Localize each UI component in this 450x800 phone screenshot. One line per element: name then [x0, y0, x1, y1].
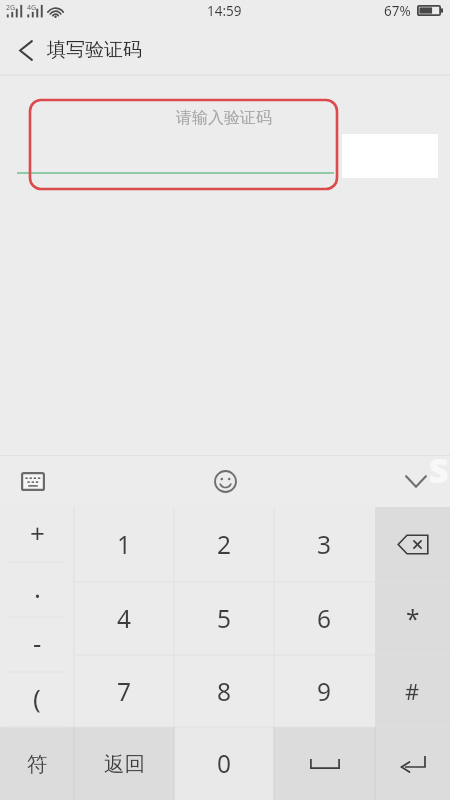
staticText: .: [34, 570, 41, 605]
staticText: 2G: [6, 3, 16, 13]
staticText: 9: [317, 675, 332, 708]
button[interactable]: 2: [174, 507, 274, 582]
button[interactable]: *: [375, 582, 450, 655]
button[interactable]: 8: [174, 655, 274, 727]
staticText: 6: [317, 602, 332, 635]
staticText: 7: [117, 675, 132, 708]
button[interactable]: -: [0, 617, 74, 672]
staticText: +: [30, 515, 45, 550]
staticText: 8: [217, 675, 232, 708]
button[interactable]: Switch keyboard: [10, 458, 56, 504]
staticText: 14:59: [207, 2, 242, 20]
staticText: 返回: [104, 751, 145, 777]
staticText: 4: [117, 602, 132, 635]
button[interactable]: (: [0, 672, 74, 727]
staticText: 0: [217, 747, 232, 780]
button[interactable]: 0: [174, 727, 274, 800]
button[interactable]: 1: [74, 507, 174, 582]
staticText: 3: [317, 528, 332, 561]
staticText: 填写验证码: [47, 38, 142, 62]
staticText: 4G: [27, 3, 37, 13]
button[interactable]: 返回: [74, 727, 174, 800]
button[interactable]: +: [0, 507, 74, 562]
button[interactable]: Enter: [375, 727, 450, 800]
button[interactable]: Backspace: [375, 507, 450, 582]
button[interactable]: 3: [274, 507, 375, 582]
button[interactable]: 7: [74, 655, 174, 727]
button[interactable]: Space: [274, 727, 375, 800]
button[interactable]: 5: [174, 582, 274, 655]
staticText: 请输入验证码: [176, 108, 272, 128]
staticText: #: [405, 676, 420, 706]
staticText: 1: [117, 528, 132, 561]
button[interactable]: 6: [274, 582, 375, 655]
staticText: -: [33, 625, 42, 660]
button[interactable]: #: [375, 655, 450, 727]
staticText: (: [33, 680, 41, 715]
button[interactable]: 9: [274, 655, 375, 727]
staticText: 2: [217, 528, 232, 561]
staticText: 5: [217, 602, 232, 635]
button[interactable]: 4: [74, 582, 174, 655]
button[interactable]: .: [0, 562, 74, 617]
staticText: 符: [27, 751, 48, 777]
button[interactable]: Hide keyboard: [393, 458, 439, 504]
button[interactable]: Emoji: [202, 458, 248, 504]
staticText: S: [429, 447, 449, 493]
button[interactable]: Back: [3, 28, 49, 72]
staticText: *: [406, 602, 420, 635]
button[interactable]: 符: [0, 727, 74, 800]
button[interactable]: 请输入验证码: [17, 100, 334, 174]
staticText: 67%: [384, 2, 411, 20]
